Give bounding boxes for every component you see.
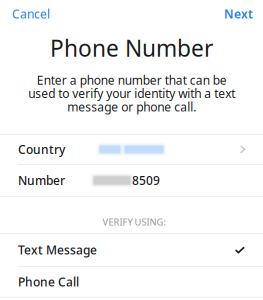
button[interactable]: Next [221,2,256,26]
staticText: Phone Number [50,33,213,63]
staticText: 8509 [132,172,160,188]
staticText: Text Message [18,242,97,258]
staticText: Phone Call [18,274,79,290]
staticText: Cancel [12,6,50,22]
staticText: Enter a phone number that can be used to… [28,72,235,115]
button[interactable]: Phone Call [0,267,263,297]
staticText: Country [18,141,65,157]
staticText: VERIFY USING: [102,216,166,228]
button[interactable]: Country [0,135,263,164]
button[interactable]: Text Message [0,234,263,266]
staticText: Next [224,6,253,22]
staticText: Number [18,172,65,188]
button[interactable]: Cancel [9,2,53,26]
